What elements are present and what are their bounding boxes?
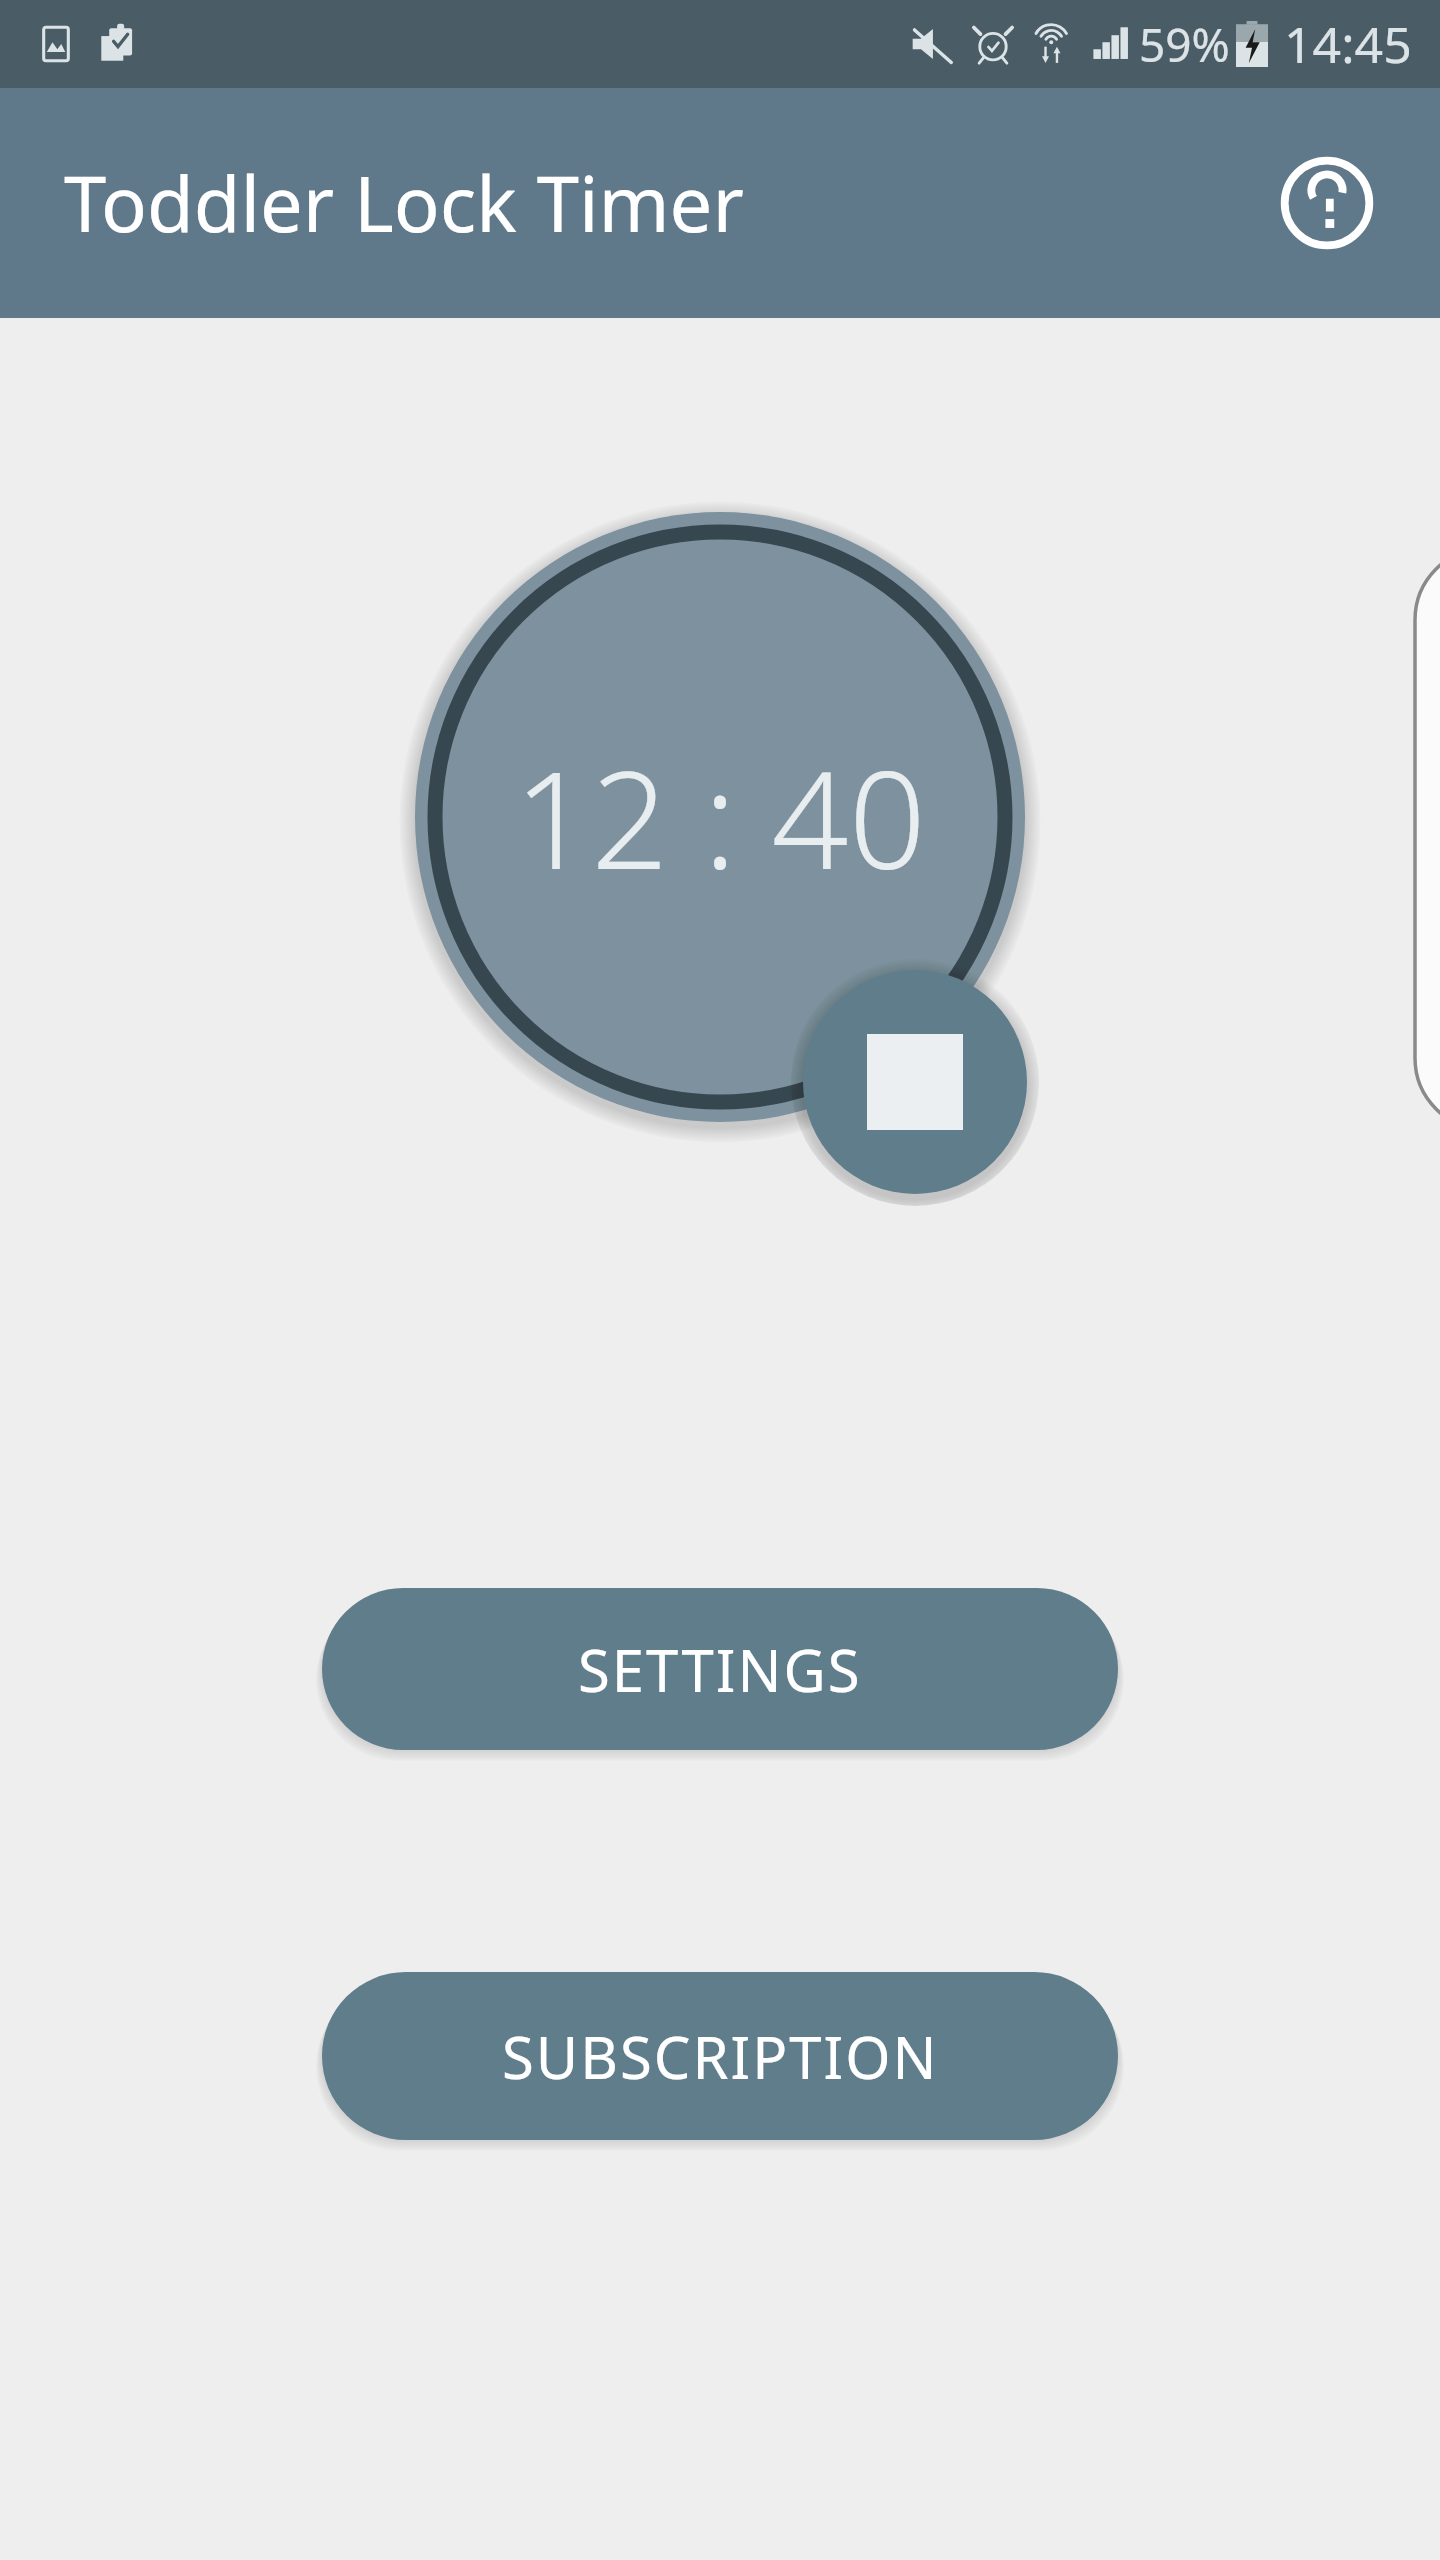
button[interactable]: SETTINGS — [322, 1588, 1118, 1750]
button[interactable]: Help — [1262, 138, 1392, 268]
button[interactable]: SUBSCRIPTION — [322, 1972, 1118, 2140]
staticText: 12 : 40 — [514, 725, 926, 909]
staticText: 59% — [1139, 13, 1230, 76]
button[interactable]: 12 : 40 — [402, 499, 1038, 1135]
button[interactable]: Stop timer — [791, 958, 1039, 1206]
staticText: SUBSCRIPTION — [502, 2017, 939, 2096]
staticText: 14:45 — [1284, 10, 1412, 78]
staticText: Toddler Lock Timer — [64, 151, 744, 255]
staticText: SETTINGS — [578, 1630, 862, 1709]
